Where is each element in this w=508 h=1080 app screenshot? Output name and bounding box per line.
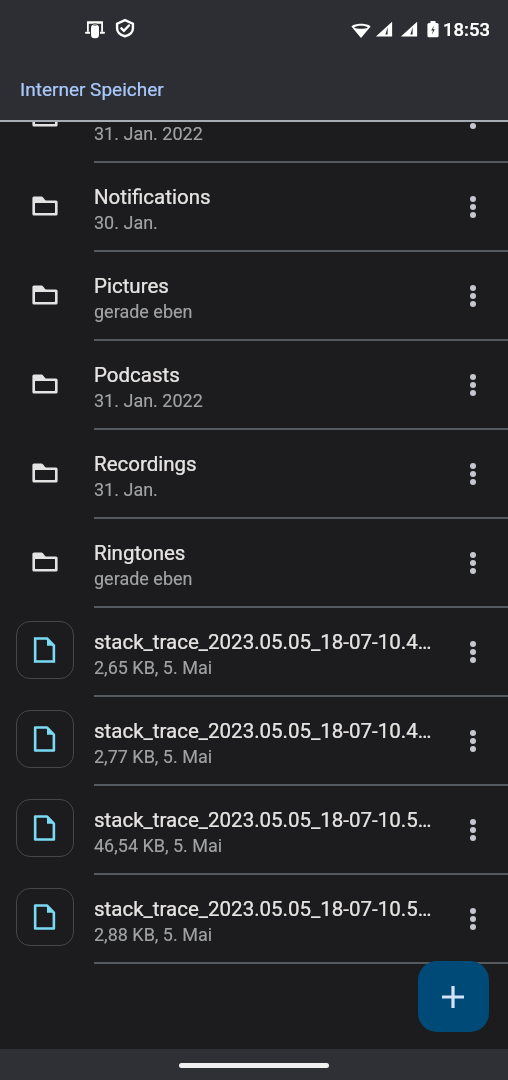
staticText: Notifications [94, 185, 211, 209]
button[interactable]: stack_trace_2023.05.05_18-07-10.5… [0, 874, 508, 963]
staticText: 2,65 KB, 5. Mai [94, 657, 213, 678]
staticText: 2,77 KB, 5. Mai [94, 746, 213, 767]
button[interactable]: Weitere Optionen [444, 518, 508, 607]
button[interactable]: Weitere Optionen [444, 251, 508, 340]
button[interactable]: Recordings [0, 429, 508, 518]
button[interactable]: stack_trace_2023.05.05_18-07-10.5… [0, 785, 508, 874]
staticText: Interner Speicher [20, 78, 164, 100]
staticText: 30. Jan. [94, 212, 158, 233]
staticText: Recordings [94, 452, 197, 476]
staticText: 46,54 KB, 5. Mai [94, 835, 223, 856]
staticText: stack_trace_2023.05.05_18-07-10.4… [94, 630, 432, 654]
staticText: Pictures [94, 274, 169, 298]
staticText: gerade eben [94, 301, 193, 322]
staticText: stack_trace_2023.05.05_18-07-10.5… [94, 897, 432, 921]
staticText: gerade eben [94, 568, 193, 589]
staticText: 31. Jan. 2022 [94, 123, 203, 144]
staticText: stack_trace_2023.05.05_18-07-10.4… [94, 719, 432, 743]
button[interactable]: Weitere Optionen [444, 607, 508, 696]
button[interactable]: Weitere Optionen [444, 120, 508, 162]
button[interactable]: Podcasts [0, 340, 508, 429]
button[interactable]: Notifications [0, 162, 508, 251]
staticText: 31. Jan. 2022 [94, 390, 203, 411]
button[interactable]: stack_trace_2023.05.05_18-07-10.4… [0, 607, 508, 696]
button[interactable]: Neu erstellen [418, 961, 489, 1032]
button[interactable]: Weitere Optionen [444, 429, 508, 518]
button[interactable]: Weitere Optionen [444, 874, 508, 963]
button[interactable]: stack_trace_2023.05.05_18-07-10.4… [0, 696, 508, 785]
staticText: Podcasts [94, 363, 180, 387]
staticText: stack_trace_2023.05.05_18-07-10.5… [94, 808, 432, 832]
staticText: Ringtones [94, 541, 186, 565]
button[interactable]: Weitere Optionen [444, 340, 508, 429]
staticText: 31. Jan. [94, 479, 158, 500]
button[interactable]: Downloads [0, 120, 508, 162]
button[interactable]: Weitere Optionen [444, 696, 508, 785]
button[interactable]: Weitere Optionen [444, 785, 508, 874]
button[interactable]: Weitere Optionen [444, 162, 508, 251]
button[interactable]: Pictures [0, 251, 508, 340]
staticText: 2,88 KB, 5. Mai [94, 924, 213, 945]
staticText: 18:53 [443, 19, 490, 41]
button[interactable]: Ringtones [0, 518, 508, 607]
